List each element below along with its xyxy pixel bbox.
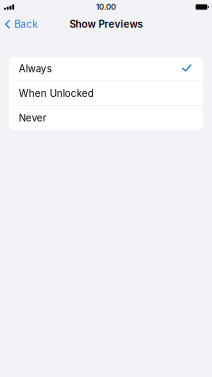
staticText: Show Previews [69,18,142,30]
button[interactable]: Never [9,106,203,130]
staticText: Never [19,112,47,124]
staticText: Back [14,18,37,30]
staticText: When Unlocked [19,87,94,99]
staticText: 10.00 [96,2,116,12]
button[interactable]: Always [9,57,203,81]
button[interactable]: When Unlocked [9,81,203,105]
staticText: Always [19,63,52,75]
button[interactable]: Back [0,15,42,33]
